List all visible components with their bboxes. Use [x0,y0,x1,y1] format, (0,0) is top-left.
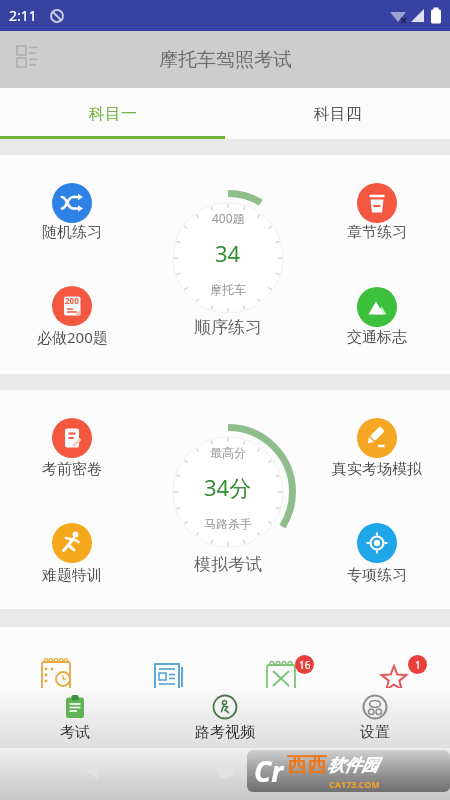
staticText: 34分 [204,472,252,502]
button[interactable] [0,31,57,88]
button[interactable]: 考前密卷 [7,418,137,481]
staticText: 马路杀手 [204,516,252,531]
button[interactable]: 路考视频 [150,688,300,748]
staticText: 400题 [212,210,245,226]
staticText: 西西 [287,753,327,778]
staticText: 摩托车 [210,282,246,297]
button[interactable]: 交通标志 [312,287,442,349]
staticText: 真实考场模拟 [332,460,422,479]
button[interactable]: 科目一 [0,88,225,139]
button[interactable]: 200 [7,286,137,349]
staticText: 难题特训 [42,566,102,585]
staticText: 1 [415,658,421,672]
button[interactable]: 科目四 [225,88,450,139]
staticText: 随机练习 [42,223,102,242]
staticText: 交通标志 [347,328,407,347]
staticText: 考试 [60,723,90,742]
staticText: 16 [299,658,311,672]
staticText: 路考视频 [195,723,255,742]
button[interactable]: 考试 [0,688,150,748]
staticText: 软件园 [327,755,378,776]
staticText: 最高分 [210,445,246,460]
button[interactable]: 难题特训 [7,523,137,587]
button[interactable]: 章节练习 [312,183,442,244]
button[interactable]: 设置 [300,688,450,748]
button[interactable]: 随机练习 [7,183,137,244]
staticText: 顺序练习 [194,317,262,338]
staticText: 章节练习 [347,223,407,242]
staticText: 科目四 [314,104,362,124]
staticText: 200 [65,295,79,306]
staticText: 必做200题 [37,327,108,347]
staticText: 摩托车驾照考试 [159,48,292,72]
staticText: 专项练习 [347,566,407,585]
button[interactable]: 专项练习 [312,523,442,587]
staticText: 设置 [360,723,390,742]
staticText: 科目一 [89,104,137,124]
staticText: 34 [215,238,241,268]
staticText: CA173.COM [329,778,380,790]
staticText: Cr [254,752,283,790]
staticText: 2:11 [9,6,37,25]
staticText: 模拟考试 [194,554,262,575]
staticText: 考前密卷 [42,460,102,479]
button[interactable]: 真实考场模拟 [312,418,442,481]
